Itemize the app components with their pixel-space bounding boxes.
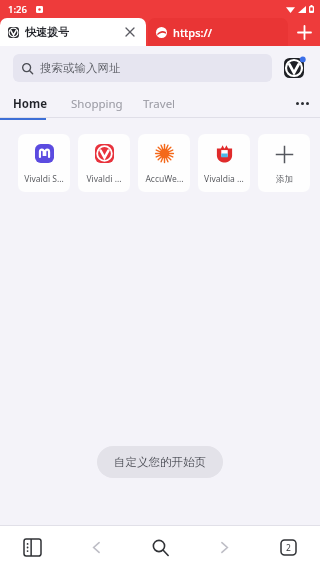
staticText: Vivaldia ... [204,173,244,185]
button[interactable]: Tabs [256,526,320,568]
staticText: 搜索或输入网址 [40,61,121,75]
button[interactable]: Home [0,90,61,117]
staticText: 添加 [276,174,293,185]
button[interactable]: AccuWe... [138,134,190,192]
button[interactable]: 快速拨号 [0,18,146,46]
staticText: 快速拨号 [25,25,69,39]
button[interactable]: https://vivaldi.com/andr [148,18,288,46]
other: Add [275,145,294,164]
button[interactable]: Vivaldi ... [78,134,130,192]
button[interactable]: Back [64,526,128,568]
staticText: 自定义您的开始页 [114,455,206,469]
button[interactable]: 搜索或输入网址 [13,54,272,82]
button[interactable]: Add [258,134,310,192]
button[interactable]: More options [284,90,320,117]
staticText: Home [13,96,48,112]
button[interactable]: Forward [192,526,256,568]
button[interactable]: New tab [288,18,320,46]
staticText: Shopping [71,96,123,112]
button[interactable]: Vivaldia ... [198,134,250,192]
staticText: Vivaldi S... [24,173,64,185]
staticText: Travel [143,96,176,112]
staticText: 2 [286,542,291,554]
staticText: AccuWe... [145,173,184,185]
button[interactable]: Vivaldi menu [281,55,307,81]
staticText: https://vivaldi.com/andr [173,25,264,40]
button[interactable]: Travel [133,90,186,117]
button[interactable]: Vivaldi S... [18,134,70,192]
button[interactable]: Shopping [61,90,133,117]
button[interactable]: Search [128,526,192,568]
button[interactable]: Close tab [122,24,138,40]
button[interactable]: 自定义您的开始页 [97,446,223,478]
staticText: 1:26 [8,3,27,16]
button[interactable]: Panels [0,526,64,568]
staticText: Vivaldi ... [86,173,122,185]
